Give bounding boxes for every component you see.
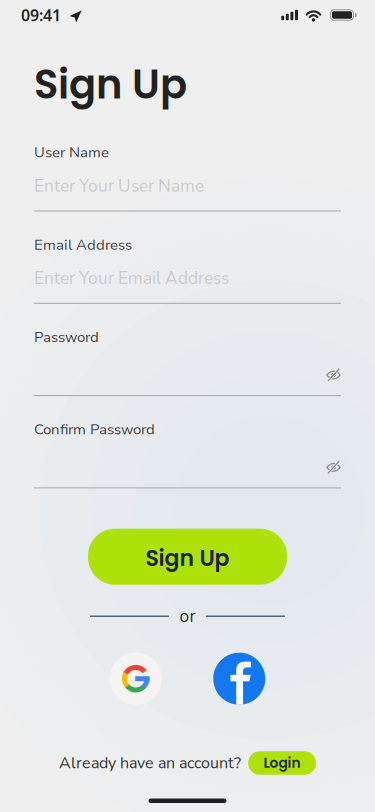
staticText: Login: [263, 753, 300, 773]
button[interactable]: Show password: [320, 367, 341, 384]
staticText: Confirm Password: [34, 419, 155, 439]
button[interactable]: User Name text field: [34, 174, 341, 211]
staticText: Sign Up: [34, 56, 187, 112]
staticText: Already have an account?: [59, 752, 241, 774]
button[interactable]: Sign up with Google: [110, 653, 162, 705]
staticText: or: [179, 604, 195, 628]
button[interactable]: Email Address text field: [34, 267, 341, 304]
staticText: Password: [34, 327, 99, 347]
button[interactable]: Sign Up: [88, 529, 287, 585]
staticText: Enter Your Email Address: [34, 266, 229, 290]
button[interactable]: Login: [248, 751, 316, 775]
staticText: Email Address: [34, 235, 132, 255]
staticText: User Name: [34, 142, 109, 162]
button[interactable]: Confirm Password text field: [34, 451, 341, 488]
button[interactable]: Password text field: [34, 359, 341, 396]
button[interactable]: Show password: [320, 459, 341, 476]
staticText: Enter Your User Name: [34, 174, 204, 198]
staticText: Sign Up: [145, 543, 229, 574]
button[interactable]: Sign up with Facebook: [213, 653, 265, 705]
staticText: 09:41: [21, 4, 61, 26]
